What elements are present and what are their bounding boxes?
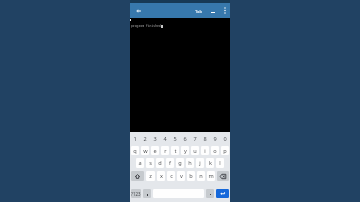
button[interactable]: v: [177, 171, 185, 181]
staticText: 9: [213, 135, 217, 143]
staticText: z: [149, 172, 152, 180]
button[interactable]: r: [161, 146, 169, 155]
staticText: a: [138, 159, 142, 167]
staticText: v: [180, 172, 183, 180]
button[interactable]: More options: [220, 3, 230, 18]
button[interactable]: k: [206, 158, 214, 168]
button[interactable]: 7: [190, 132, 200, 146]
staticText: w: [143, 147, 148, 155]
staticText: n: [199, 172, 203, 180]
staticText: c: [170, 172, 173, 180]
staticText: p: [223, 147, 227, 155]
staticText: h: [188, 159, 192, 167]
button[interactable]: j: [196, 158, 204, 168]
staticText: Tab: [195, 8, 203, 14]
button[interactable]: t: [171, 146, 179, 155]
button[interactable]: q: [131, 146, 139, 155]
button[interactable]: Enter: [216, 189, 229, 198]
staticText: 2: [143, 135, 147, 143]
button[interactable]: b: [187, 171, 195, 181]
staticText: 5: [173, 135, 177, 143]
button[interactable]: 6: [180, 132, 190, 146]
button[interactable]: Back: [132, 3, 144, 18]
staticText: 6: [183, 135, 187, 143]
button[interactable]: 2: [140, 132, 150, 146]
staticText: q: [133, 147, 137, 155]
staticText: x: [160, 172, 163, 180]
staticText: u: [193, 147, 197, 155]
button[interactable]: e: [151, 146, 159, 155]
button[interactable]: 9: [210, 132, 220, 146]
button[interactable]: s: [146, 158, 154, 168]
button[interactable]: 1: [130, 132, 140, 146]
staticText: 3: [153, 135, 157, 143]
button[interactable]: u: [191, 146, 199, 155]
staticText: f: [169, 159, 171, 167]
button[interactable]: Comma: [143, 189, 151, 198]
staticText: y: [184, 147, 187, 155]
staticText: t: [174, 147, 177, 155]
button[interactable]: m: [207, 171, 215, 181]
button[interactable]: 4: [160, 132, 170, 146]
staticText: b: [189, 172, 193, 180]
button[interactable]: f: [166, 158, 174, 168]
staticText: d: [158, 159, 162, 167]
staticText: ?123: [131, 191, 141, 197]
staticText: l: [219, 159, 221, 167]
button[interactable]: 0: [220, 132, 230, 146]
button[interactable]: x: [157, 171, 165, 181]
staticText: k: [209, 159, 212, 167]
button[interactable]: p: [221, 146, 229, 155]
button[interactable]: c: [167, 171, 175, 181]
button[interactable]: n: [197, 171, 205, 181]
button[interactable]: y: [181, 146, 189, 155]
staticText: i: [204, 147, 206, 155]
button[interactable]: Tab: [195, 3, 203, 18]
button[interactable]: o: [211, 146, 219, 155]
staticText: 8: [203, 135, 207, 143]
staticText: 0: [223, 135, 227, 143]
button[interactable]: g: [176, 158, 184, 168]
button[interactable]: Minimize: [208, 3, 217, 18]
button[interactable]: l: [216, 158, 224, 168]
staticText: 1: [133, 135, 137, 143]
button[interactable]: Period: [206, 189, 214, 198]
button[interactable]: Symbols: [131, 189, 141, 198]
staticText: e: [153, 147, 157, 155]
button[interactable]: d: [156, 158, 164, 168]
button[interactable]: 8: [200, 132, 210, 146]
button[interactable]: Shift: [131, 171, 144, 181]
staticText: s: [149, 159, 152, 167]
button[interactable]: z: [146, 171, 155, 181]
button[interactable]: h: [186, 158, 194, 168]
button[interactable]: w: [141, 146, 149, 155]
staticText: r: [164, 147, 167, 155]
staticText: program finished: [131, 24, 161, 28]
button[interactable]: 3: [150, 132, 160, 146]
button[interactable]: a: [136, 158, 144, 168]
staticText: g: [178, 159, 182, 167]
button[interactable]: i: [201, 146, 209, 155]
staticText: o: [213, 147, 217, 155]
button[interactable]: 5: [170, 132, 180, 146]
staticText: j: [199, 159, 201, 167]
staticText: m: [208, 172, 214, 180]
staticText: 4: [163, 135, 167, 143]
button[interactable]: Backspace: [217, 171, 229, 181]
staticText: 7: [193, 135, 197, 143]
